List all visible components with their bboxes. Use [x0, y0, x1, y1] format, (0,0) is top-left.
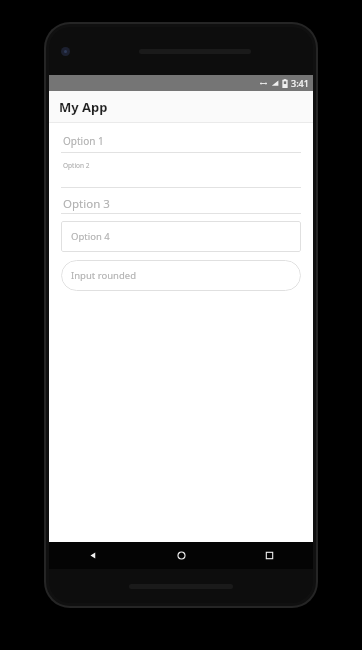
button[interactable]: Option 1 [61, 134, 301, 153]
button[interactable]: Recent apps [225, 542, 313, 569]
button[interactable]: Input rounded [61, 260, 301, 291]
button[interactable]: Option 3 [61, 196, 301, 214]
button[interactable]: Option 2 [61, 161, 301, 188]
staticText: 3:41 [291, 77, 309, 89]
staticText: Option 2 [63, 161, 90, 170]
staticText: Option 1 [63, 134, 104, 148]
staticText: My App [59, 98, 108, 116]
staticText: Option 3 [63, 196, 110, 212]
staticText: Option 4 [71, 230, 110, 243]
button[interactable]: Option 4 [61, 221, 301, 252]
button[interactable]: Back [49, 542, 137, 569]
button[interactable]: My App [49, 91, 313, 123]
staticText: Input rounded [71, 269, 136, 282]
button[interactable]: Home [137, 542, 225, 569]
